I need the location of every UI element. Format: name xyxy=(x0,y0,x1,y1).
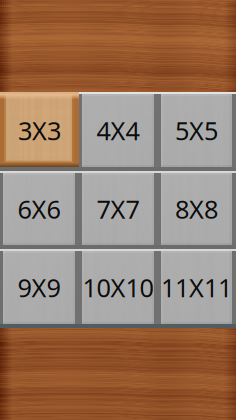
staticText: 7X7 xyxy=(96,192,139,226)
button[interactable]: 8X8 xyxy=(161,173,232,245)
button[interactable]: 4X4 xyxy=(82,94,154,167)
button[interactable]: 6X6 xyxy=(3,173,75,245)
staticText: 9X9 xyxy=(17,271,60,304)
button[interactable]: 10X10 xyxy=(82,251,154,324)
staticText: 11X11 xyxy=(161,271,232,304)
staticText: 4X4 xyxy=(96,114,139,147)
button[interactable]: 11X11 xyxy=(161,251,232,324)
staticText: 3X3 xyxy=(18,114,61,147)
staticText: 10X10 xyxy=(82,271,153,304)
button[interactable]: 5X5 xyxy=(161,94,232,167)
button[interactable]: 9X9 xyxy=(3,251,75,324)
button[interactable]: 7X7 xyxy=(82,173,154,245)
staticText: 8X8 xyxy=(175,192,218,226)
staticText: 5X5 xyxy=(175,114,218,147)
button[interactable]: 3X3 xyxy=(0,94,79,167)
staticText: 6X6 xyxy=(17,192,60,226)
